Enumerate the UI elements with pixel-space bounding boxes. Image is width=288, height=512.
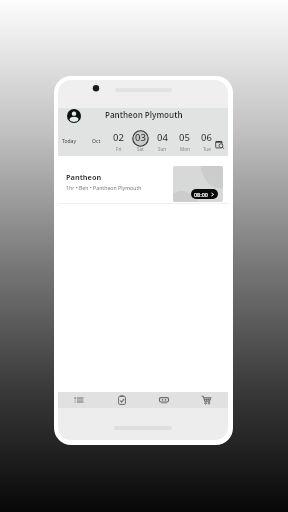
staticText: 1hr • Ben • Pantheon Plymouth — [66, 184, 142, 191]
staticText: 08:00 — [194, 191, 208, 198]
button[interactable]: Account — [66, 108, 81, 123]
button[interactable]: 04 — [151, 128, 173, 156]
staticText: Pantheon Plymouth — [105, 109, 183, 120]
button[interactable]: List — [65, 392, 93, 408]
button[interactable]: Pantheon — [58, 156, 228, 204]
button[interactable]: Inbox — [150, 392, 178, 408]
staticText: Mon — [180, 146, 190, 152]
staticText: Fri — [116, 146, 122, 152]
button[interactable]: Cart — [192, 392, 220, 408]
staticText: Today — [62, 138, 77, 145]
staticText: Pantheon — [66, 172, 102, 182]
staticText: Tue — [203, 146, 211, 152]
staticText: 02 — [113, 131, 124, 144]
button[interactable]: Search calendar — [215, 140, 224, 149]
button[interactable]: Tasks — [108, 392, 136, 408]
button[interactable]: 03 — [129, 128, 151, 156]
staticText: 03 — [135, 131, 146, 144]
staticText: 04 — [157, 131, 168, 144]
staticText: Sun — [158, 146, 167, 152]
button[interactable]: 06 — [195, 128, 217, 156]
staticText: 05 — [179, 131, 190, 144]
staticText: Sat — [137, 146, 144, 152]
button[interactable]: 05 — [173, 128, 195, 156]
staticText: Oct — [92, 138, 101, 145]
staticText: 06 — [201, 131, 212, 144]
button[interactable]: 02 — [107, 128, 129, 156]
